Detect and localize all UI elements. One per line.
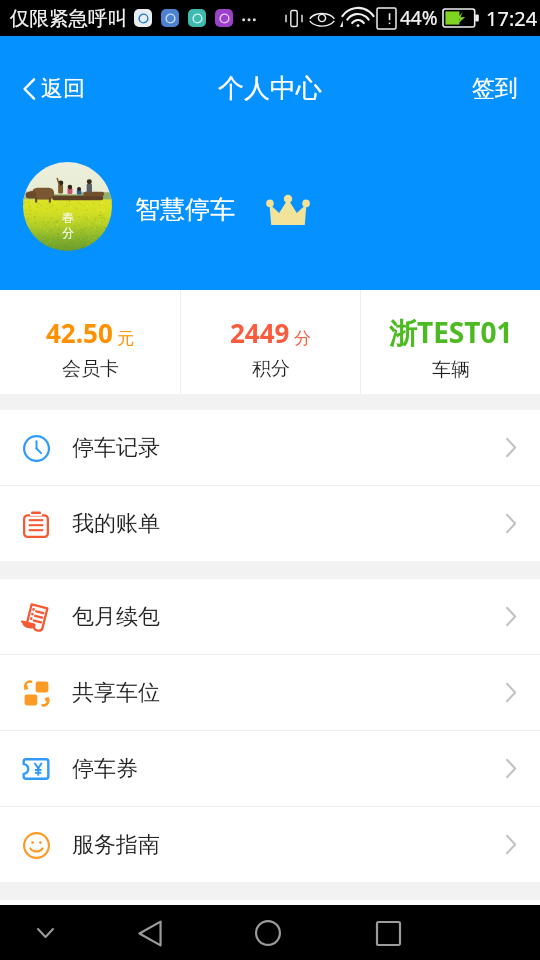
staticText: 元	[117, 328, 134, 349]
button[interactable]: 停车记录	[0, 410, 540, 485]
staticText: 17:24	[486, 5, 538, 32]
staticText: 分	[62, 225, 74, 240]
staticText: 智慧停车	[135, 194, 235, 225]
staticText: 车辆	[432, 358, 470, 382]
button[interactable]: 包月续包	[0, 579, 540, 654]
staticText: 服务指南	[72, 831, 160, 859]
staticText: 仅限紧急呼叫	[10, 6, 127, 31]
staticText: 我的账单	[72, 510, 160, 538]
button[interactable]: 我的账单	[0, 486, 540, 561]
staticText: 停车券	[72, 755, 138, 783]
staticText: 春	[62, 210, 74, 225]
button[interactable]: 2449	[181, 290, 360, 394]
staticText: 44%	[400, 5, 438, 31]
button[interactable]: Home	[245, 910, 291, 956]
button[interactable]: Hide keyboard	[22, 910, 68, 956]
staticText: 分	[294, 328, 311, 349]
button[interactable]: Back	[127, 910, 173, 956]
staticText: 返回	[41, 75, 85, 103]
staticText: 浙TEST01	[389, 313, 513, 351]
button[interactable]: 42.50	[0, 290, 180, 394]
button[interactable]: 签到	[454, 66, 540, 111]
staticText: 包月续包	[72, 603, 160, 631]
staticText: 42.50	[46, 315, 113, 350]
staticText: 2449	[230, 315, 290, 350]
button[interactable]: 服务指南	[0, 807, 540, 882]
button[interactable]: 返回	[0, 67, 103, 111]
staticText: 积分	[252, 357, 290, 381]
staticText: 停车记录	[72, 434, 160, 462]
staticText: 会员卡	[62, 357, 119, 381]
staticText: 共享车位	[72, 679, 160, 707]
staticText: 个人中心	[218, 72, 322, 105]
button[interactable]: 共享车位	[0, 655, 540, 730]
button[interactable]: 停车券	[0, 731, 540, 806]
button[interactable]: Recent apps	[365, 910, 411, 956]
button[interactable]: 浙TEST01	[361, 290, 540, 394]
